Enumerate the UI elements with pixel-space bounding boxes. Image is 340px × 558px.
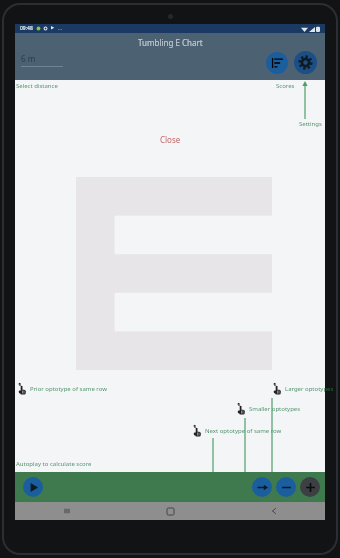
staticText: 09:48	[20, 25, 33, 32]
button[interactable]: 6 m	[21, 53, 63, 67]
button[interactable]: Back	[222, 502, 325, 520]
staticText: Close	[160, 134, 181, 145]
staticText: Tumbling E Chart	[138, 37, 203, 48]
staticText: Scores	[276, 82, 295, 90]
button[interactable]: Next optotype	[252, 477, 272, 497]
button[interactable]: Settings	[294, 51, 317, 74]
button[interactable]: Larger optotypes	[300, 477, 320, 497]
staticText: Autoplay to calculate score	[16, 460, 92, 468]
button[interactable]: Home	[119, 502, 222, 520]
staticText: 6 m	[21, 53, 36, 64]
staticText: Select distance	[16, 82, 58, 90]
button[interactable]: Scores	[266, 52, 288, 74]
staticText: Smaller optotypes	[249, 405, 301, 413]
button[interactable]: Smaller optotypes	[276, 477, 296, 497]
staticText: Larger optotypes	[285, 385, 334, 393]
staticText: Next optotype of same row	[205, 427, 282, 435]
button[interactable]: Close	[154, 132, 187, 147]
staticText: Prior optotype of same row	[30, 385, 107, 393]
staticText: Settings	[299, 120, 322, 128]
button[interactable]: Recents	[15, 502, 119, 520]
staticText: ...	[58, 25, 63, 32]
button[interactable]: Autoplay	[23, 477, 43, 497]
